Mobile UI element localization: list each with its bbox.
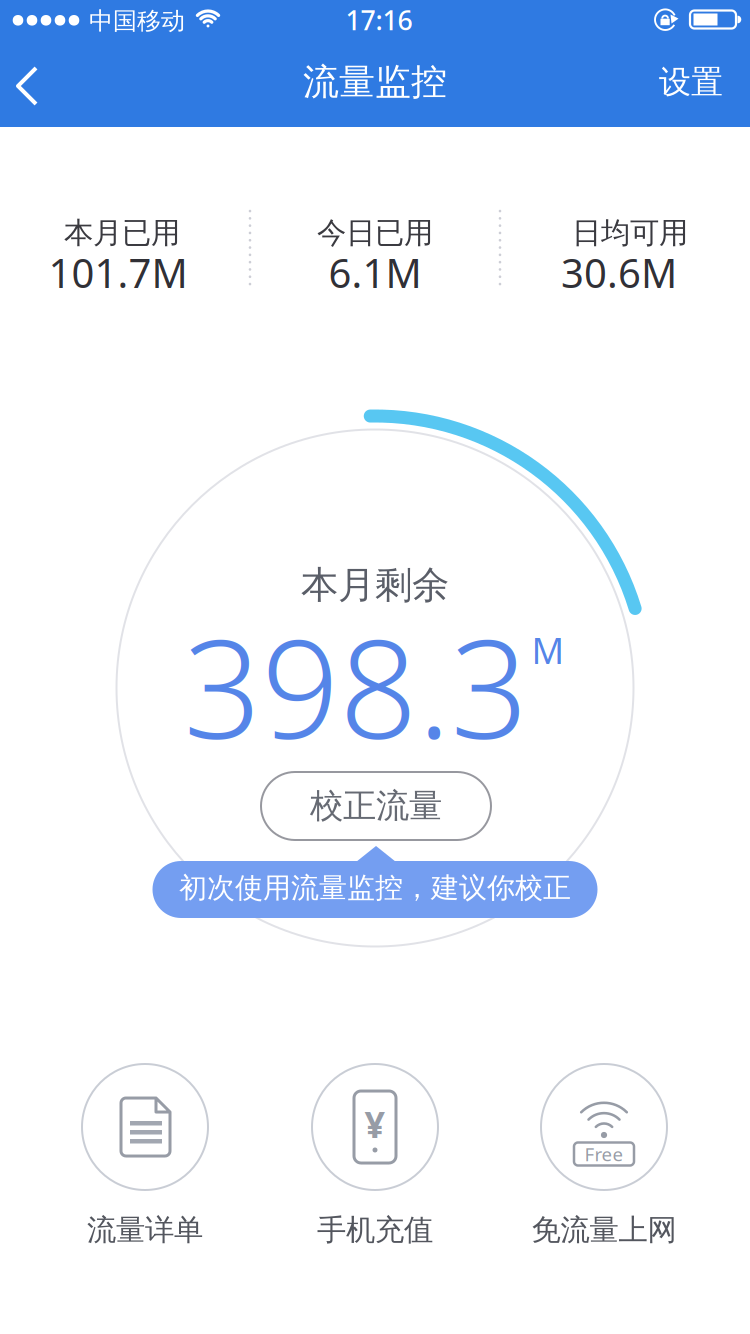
staticText: 今日已用 [317,215,433,251]
staticText: M [531,626,564,674]
staticText: 本月剩余 [301,562,449,608]
staticText: 校正流量 [310,785,442,826]
button[interactable]: 流量详单 [80,1062,210,1192]
staticText: 本月已用 [64,215,180,251]
staticText: 398.3 [183,596,528,776]
staticText: 手机充值 [317,1212,433,1248]
staticText: 免流量上网 [531,1212,676,1248]
staticText: 6.1M [328,246,421,299]
staticText: 初次使用流量监控，建议你校正 [179,871,571,905]
staticText: 17:16 [345,2,412,38]
staticText: 30.6M [561,246,677,299]
button[interactable]: 设置 [636,38,746,125]
button[interactable]: 手机充值 [310,1062,440,1192]
button[interactable]: 校正流量 [261,772,491,840]
staticText: 设置 [659,62,723,102]
staticText: 流量详单 [87,1212,203,1248]
staticText: 中国移动 [89,6,185,36]
staticText: Free [584,1142,623,1166]
staticText: 101.7M [48,246,187,299]
button[interactable]: 免流量上网 [539,1062,669,1192]
staticText: 流量监控 [303,60,447,104]
staticText: 日均可用 [572,215,688,251]
button[interactable]: Back [0,40,80,127]
staticText: ¥ [364,1100,385,1148]
